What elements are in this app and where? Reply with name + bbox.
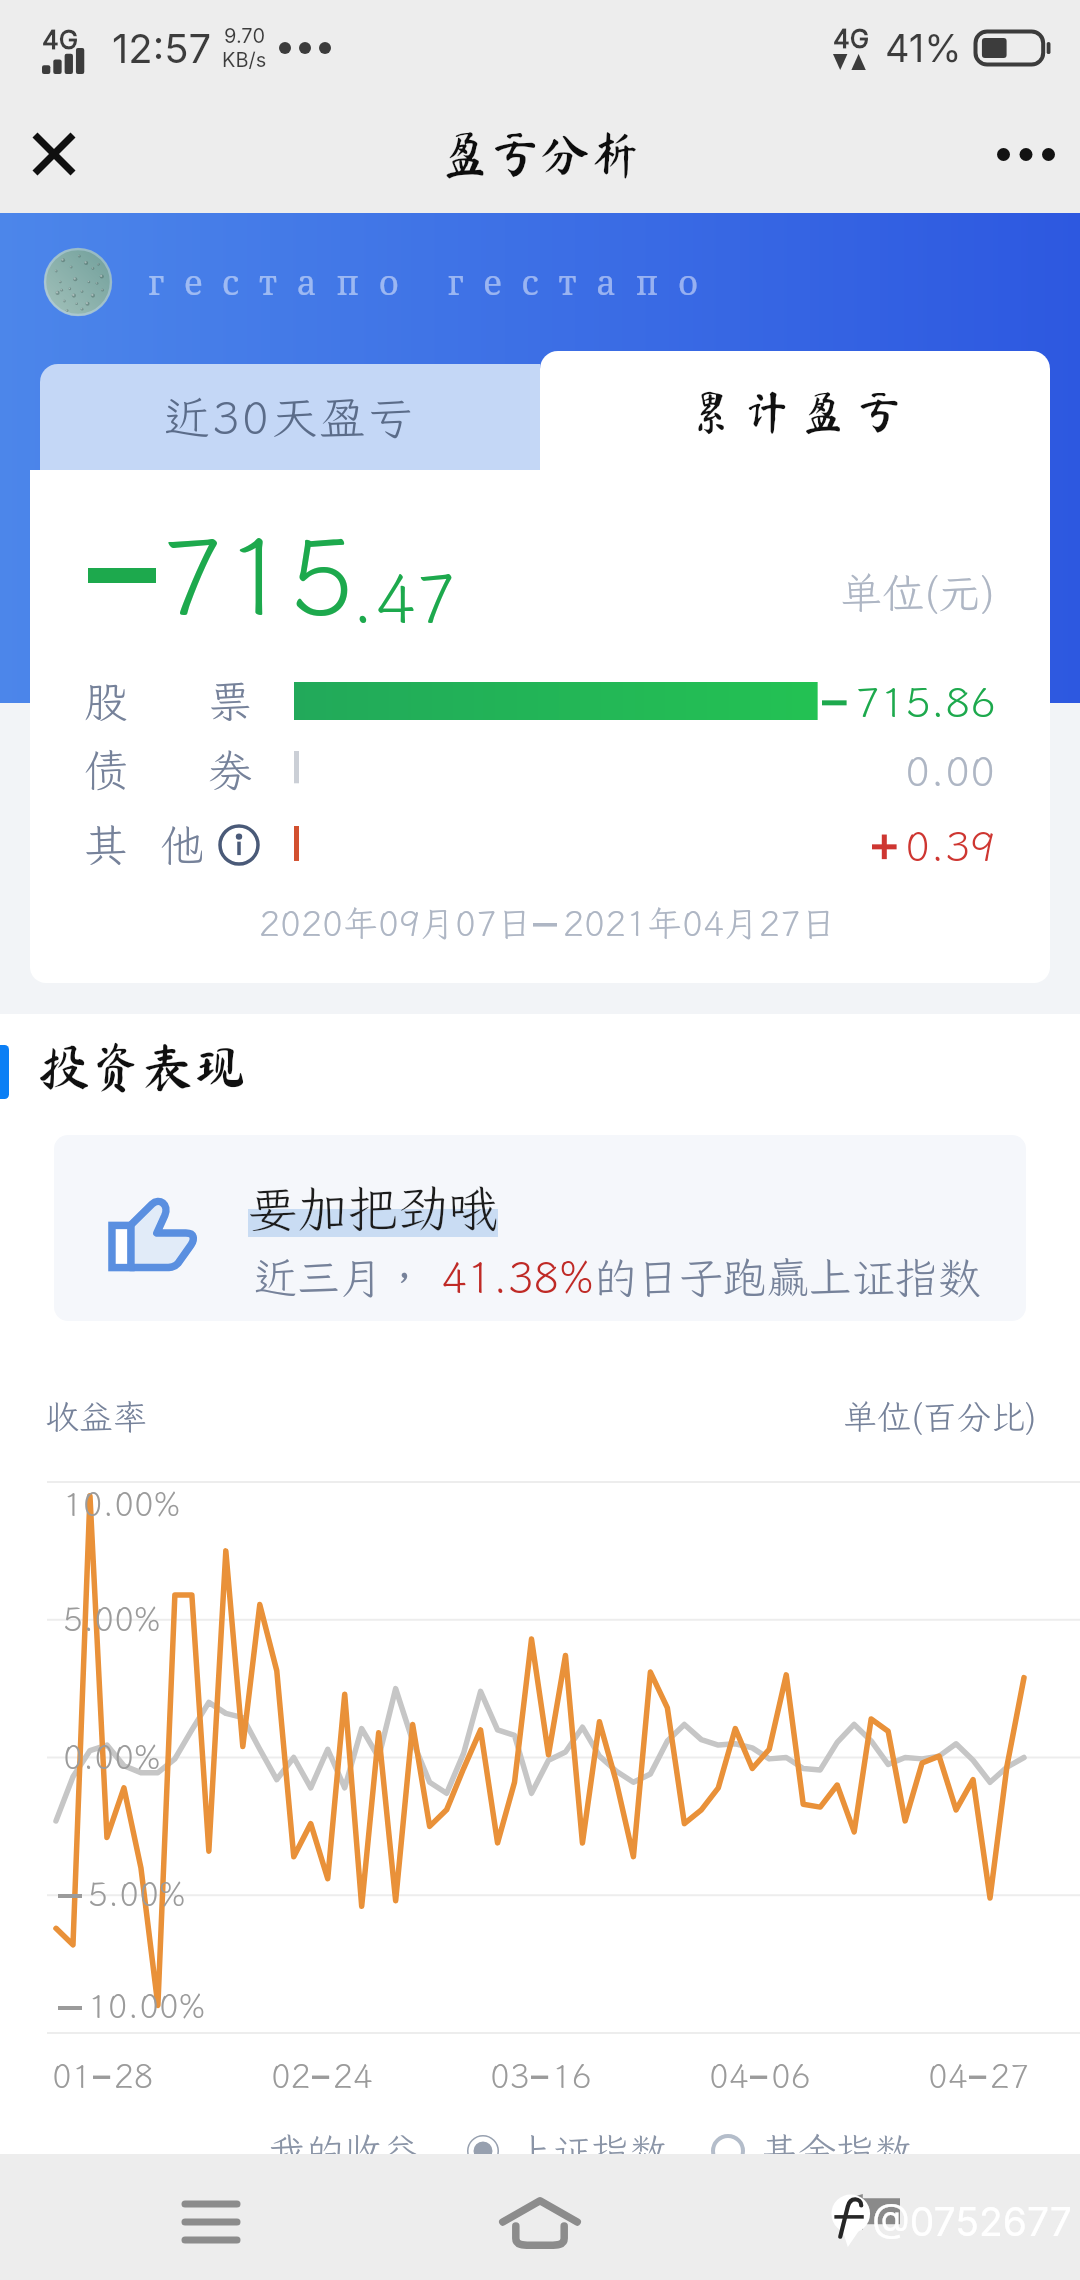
staticText: 24: [333, 2054, 373, 2097]
staticText: 03: [490, 2054, 530, 2097]
staticText: 我的收益: [268, 2126, 421, 2176]
staticText: 16: [552, 2054, 592, 2097]
staticText: 投资表现: [38, 1040, 247, 1092]
staticText: 基金指数: [760, 2126, 913, 2176]
staticText: 要加把劲哦: [248, 1175, 498, 1241]
staticText: 4G: [833, 23, 870, 54]
staticText: 股: [84, 672, 128, 730]
staticText: 票: [208, 672, 252, 730]
staticText: 41%: [885, 25, 962, 71]
staticText: 28: [114, 2054, 154, 2097]
staticText: 债: [84, 741, 128, 799]
staticText: 单位(元): [840, 565, 996, 620]
staticText: KB/s: [222, 48, 267, 72]
staticText: 4G: [42, 24, 79, 55]
staticText: 02: [271, 2054, 311, 2097]
button[interactable]: Home: [480, 2172, 600, 2272]
staticText: 12:57: [112, 24, 212, 72]
staticText: 盈亏分析: [440, 129, 640, 179]
staticText: 10.00%: [88, 1984, 206, 2027]
staticText: 他: [160, 816, 204, 874]
staticText: 2021年04月27日: [563, 900, 837, 946]
staticText: 0.00: [905, 743, 996, 798]
button[interactable]: 近30天盈亏: [40, 364, 540, 471]
button[interactable]: 累计盈亏: [540, 351, 1050, 472]
staticText: .47: [351, 552, 457, 642]
button[interactable]: 上证指数: [465, 2126, 668, 2176]
staticText: 其: [84, 816, 128, 874]
other: Info: [218, 824, 260, 866]
staticText: 01: [52, 2054, 92, 2097]
staticText: 上证指数: [515, 2126, 668, 2176]
staticText: 券: [208, 741, 252, 799]
staticText: 715.86: [855, 674, 996, 729]
staticText: 近30天盈亏: [164, 387, 416, 448]
staticText: 收益率: [45, 1394, 147, 1439]
button[interactable]: Close: [18, 118, 90, 190]
staticText: 累计盈亏: [683, 389, 907, 435]
staticText: 06: [771, 2054, 811, 2097]
staticText: 5.00%: [88, 1872, 186, 1915]
staticText: 715: [160, 503, 355, 645]
staticText: 10.00%: [63, 1482, 181, 1525]
staticText: 5.00%: [63, 1597, 161, 1640]
staticText: 27: [990, 2054, 1030, 2097]
staticText: 9.70: [224, 24, 265, 48]
button[interactable]: Menu: [151, 2172, 271, 2272]
staticText: 2020年09月07日: [259, 900, 533, 946]
staticText: гестапо гестапо: [148, 259, 718, 305]
button[interactable]: More options: [990, 118, 1062, 190]
staticText: 04: [928, 2054, 968, 2097]
staticText: 04: [709, 2054, 749, 2097]
button[interactable]: Back: [809, 2162, 929, 2272]
staticText: 0.00%: [63, 1735, 161, 1778]
staticText: 近三月， 41.38%的日子跑赢上证指数: [254, 1249, 981, 1306]
staticText: 单位(百分比): [843, 1394, 1037, 1439]
staticText: @0752677: [872, 2198, 1072, 2245]
button[interactable]: 我的收益: [268, 2126, 421, 2176]
staticText: 0.39: [905, 818, 996, 873]
button[interactable]: 基金指数: [710, 2126, 913, 2176]
button[interactable]: 要加把劲哦: [54, 1135, 1026, 1321]
